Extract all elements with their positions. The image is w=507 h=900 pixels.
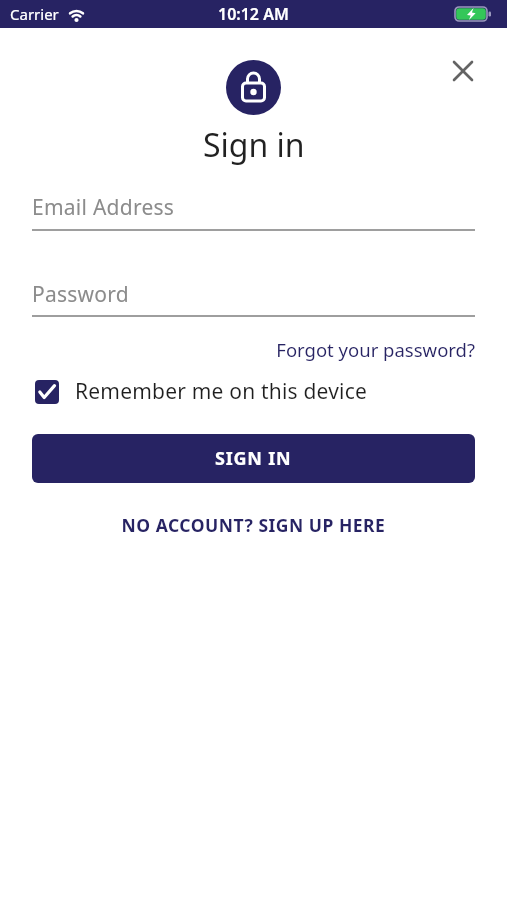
staticText: Sign in — [203, 123, 305, 167]
staticText: Forgot your password? — [32, 337, 475, 362]
staticText: Email Address — [32, 193, 175, 222]
staticText: SIGN IN — [215, 446, 292, 471]
staticText: Remember me on this device — [75, 377, 368, 406]
staticText: NO ACCOUNT? SIGN UP HERE — [32, 513, 475, 537]
staticText: 10:12 AM — [218, 3, 289, 25]
staticText: Carrier — [10, 4, 59, 24]
staticText: Password — [32, 280, 129, 309]
